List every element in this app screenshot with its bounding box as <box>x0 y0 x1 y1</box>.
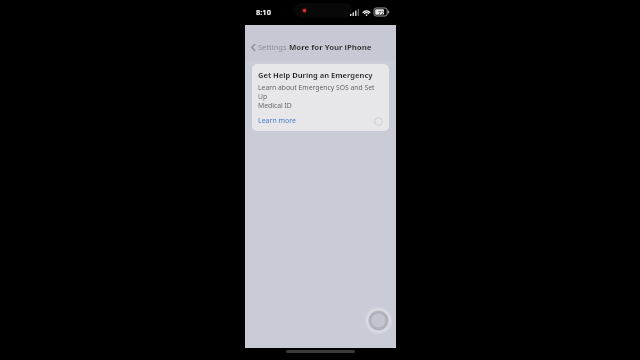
staticText: Settings <box>258 42 287 52</box>
other: Loading <box>374 117 383 126</box>
staticText: Get Help During an Emergency <box>258 70 373 80</box>
button[interactable]: Learn more <box>258 116 297 126</box>
button[interactable]: AssistiveTouch <box>365 307 392 334</box>
staticText: Learn more <box>258 116 297 126</box>
staticText: More for Your iPhone <box>289 42 372 53</box>
staticText: Learn about Emergency SOS and Set Up Med… <box>258 83 383 110</box>
staticText: 8:10 <box>256 7 271 17</box>
button[interactable]: Settings <box>248 40 290 54</box>
button[interactable]: Get Help During an Emergency <box>252 64 389 131</box>
staticText: 72 <box>378 9 384 16</box>
